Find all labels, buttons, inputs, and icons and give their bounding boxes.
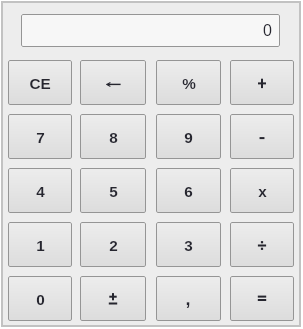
- staticText: 5: [109, 183, 118, 200]
- button[interactable]: 5: [80, 168, 146, 213]
- button[interactable]: 0: [8, 276, 72, 321]
- button[interactable]: CE: [8, 60, 72, 105]
- button[interactable]: 9: [156, 114, 221, 159]
- button[interactable]: Display: [21, 14, 280, 47]
- button[interactable]: Equals: [230, 276, 294, 321]
- staticText: %: [182, 75, 196, 92]
- staticText: 0: [263, 22, 272, 40]
- staticText: 7: [36, 129, 45, 146]
- staticText: CE: [29, 75, 51, 92]
- button[interactable]: 6: [156, 168, 221, 213]
- button[interactable]: 2: [80, 222, 146, 267]
- staticText: 1: [36, 237, 45, 254]
- button[interactable]: Percent: [156, 60, 221, 105]
- button[interactable]: 1: [8, 222, 72, 267]
- button[interactable]: 3: [156, 222, 221, 267]
- staticText: 4: [36, 183, 45, 200]
- button[interactable]: 7: [8, 114, 72, 159]
- button[interactable]: Divide: [230, 222, 294, 267]
- button[interactable]: 8: [80, 114, 146, 159]
- staticText: 6: [184, 183, 193, 200]
- button[interactable]: Backspace: [80, 60, 146, 105]
- button[interactable]: Minus: [230, 114, 294, 159]
- button[interactable]: Decimal separator: [156, 276, 221, 321]
- staticText: 8: [109, 129, 118, 146]
- staticText: ,: [185, 289, 191, 309]
- staticText: 3: [184, 237, 193, 254]
- button[interactable]: Multiply: [230, 168, 294, 213]
- button[interactable]: Plus: [230, 60, 294, 105]
- staticText: 2: [109, 237, 118, 254]
- staticText: 9: [184, 129, 193, 146]
- button[interactable]: Plus minus: [80, 276, 146, 321]
- button[interactable]: 4: [8, 168, 72, 213]
- staticText: x: [258, 183, 267, 200]
- staticText: 0: [36, 291, 45, 308]
